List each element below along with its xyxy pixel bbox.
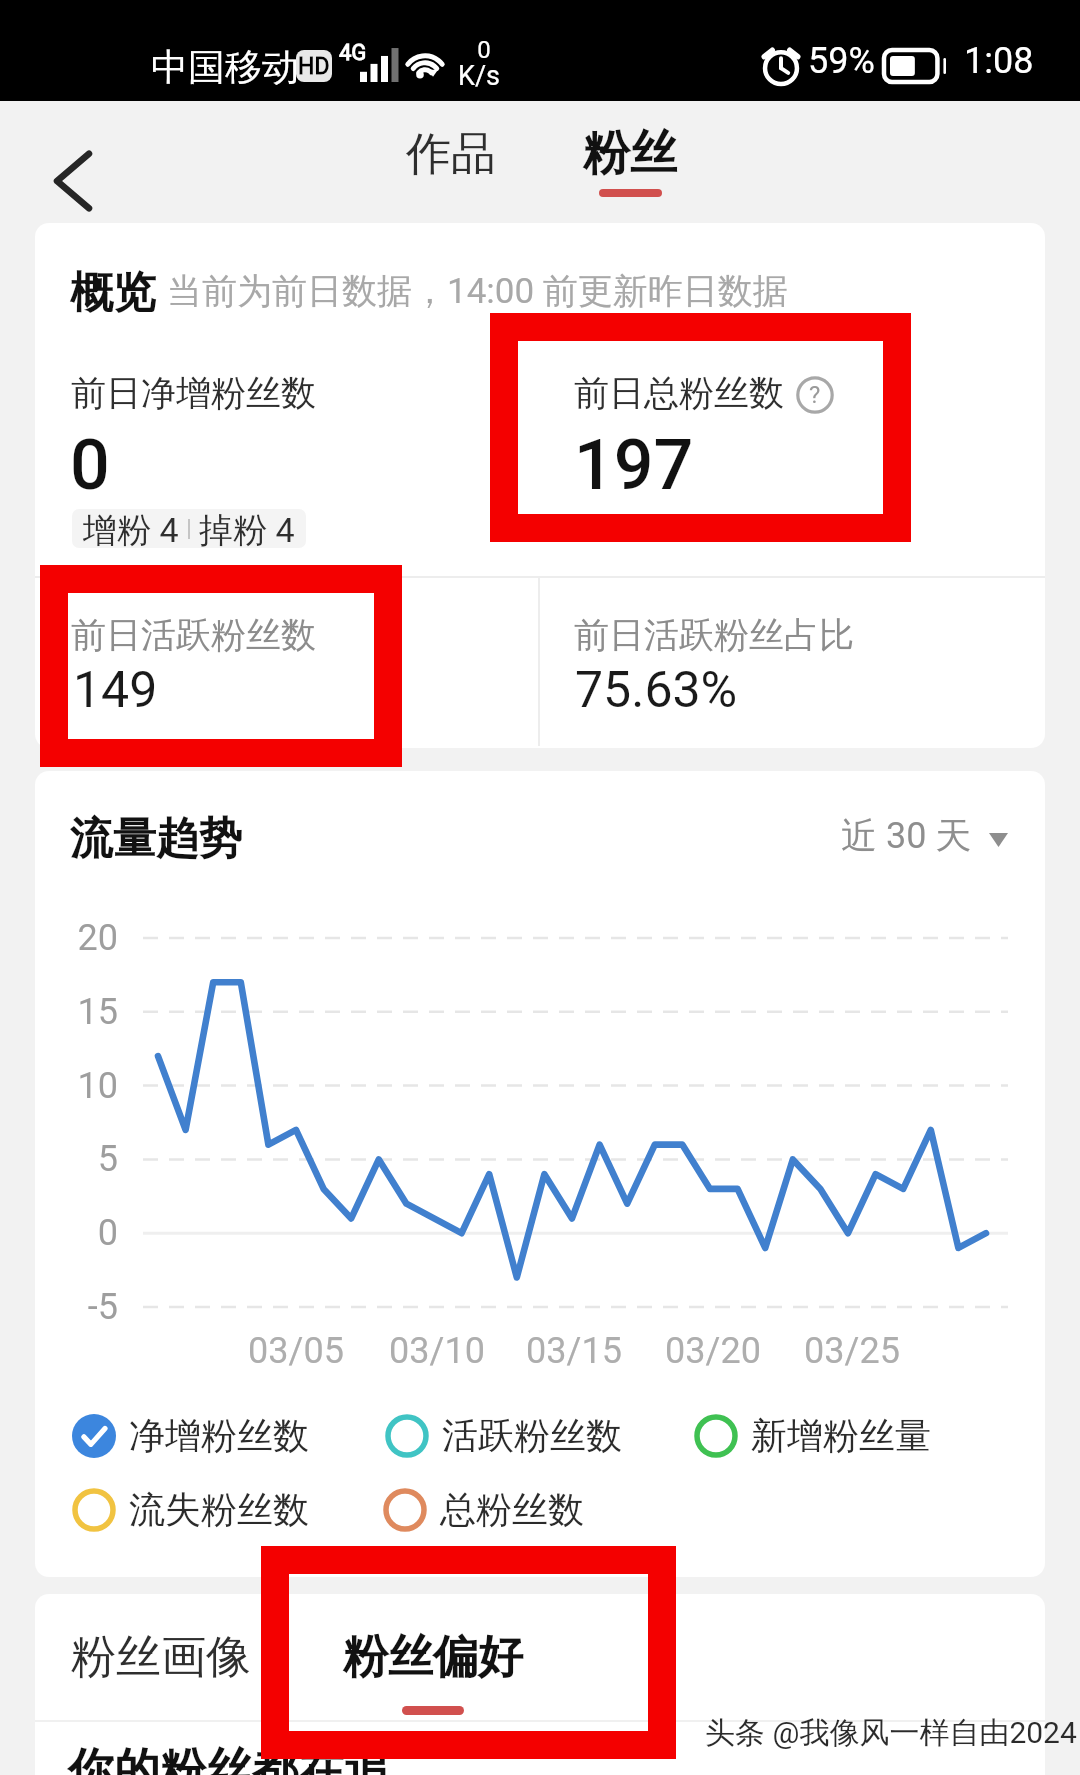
staticText: 新增粉丝量 bbox=[751, 1413, 931, 1458]
button[interactable]: 粉丝画像 bbox=[48, 1609, 274, 1705]
staticText: 增粉 4 bbox=[83, 509, 179, 548]
staticText: 头条 @我像风一样自由2024 bbox=[705, 1714, 1077, 1752]
staticText: 中国移动 bbox=[151, 44, 299, 91]
staticText: 掉粉 4 bbox=[199, 509, 295, 548]
staticText: K/s bbox=[458, 60, 501, 92]
button[interactable]: 粉丝 bbox=[565, 108, 695, 208]
staticText: 5 bbox=[32, 1138, 118, 1180]
staticText: 03/25 bbox=[777, 1330, 927, 1372]
staticText: 总粉丝数 bbox=[440, 1487, 584, 1532]
button[interactable]: 流失粉丝数 bbox=[72, 1487, 309, 1532]
staticText: 03/20 bbox=[638, 1330, 788, 1372]
button[interactable]: 总粉丝数 bbox=[383, 1487, 584, 1532]
staticText: 前日活跃粉丝数 bbox=[71, 613, 316, 657]
staticText: 197 bbox=[574, 424, 694, 506]
staticText: 75.63% bbox=[575, 661, 738, 720]
staticText: 粉丝画像 bbox=[71, 1629, 251, 1686]
staticText: 59% bbox=[808, 40, 875, 82]
staticText: HD bbox=[298, 53, 330, 80]
staticText: 近 30 天 bbox=[841, 813, 972, 858]
staticText: 03/05 bbox=[221, 1330, 371, 1372]
staticText: 流量趋势 bbox=[70, 812, 242, 866]
staticText: 粉丝 bbox=[583, 124, 677, 183]
staticText: 4G bbox=[339, 40, 367, 66]
staticText: 前日总粉丝数 bbox=[574, 371, 784, 415]
staticText: 净增粉丝数 bbox=[129, 1413, 309, 1458]
staticText: 前日活跃粉丝占比 bbox=[574, 613, 854, 657]
staticText: 10 bbox=[32, 1065, 118, 1107]
button[interactable]: 新增粉丝量 bbox=[694, 1413, 931, 1458]
button[interactable]: 粉丝偏好 bbox=[320, 1609, 546, 1719]
staticText: 前日净增粉丝数 bbox=[71, 371, 316, 415]
staticText: 15 bbox=[32, 991, 118, 1033]
staticText: 活跃粉丝数 bbox=[442, 1413, 622, 1458]
button[interactable]: Back bbox=[30, 138, 116, 224]
button[interactable]: 活跃粉丝数 bbox=[385, 1413, 622, 1458]
staticText: ? bbox=[809, 381, 821, 409]
button[interactable]: 净增粉丝数 bbox=[72, 1413, 309, 1458]
staticText: -5 bbox=[32, 1286, 118, 1328]
button[interactable]: 作品 bbox=[386, 113, 516, 195]
staticText: 149 bbox=[73, 661, 158, 720]
staticText: 0 bbox=[464, 36, 504, 64]
staticText: 03/15 bbox=[499, 1330, 649, 1372]
staticText: 0 bbox=[70, 424, 110, 506]
staticText: 作品 bbox=[406, 126, 496, 183]
button[interactable]: Help: total followers bbox=[796, 376, 834, 414]
staticText: 当前为前日数据，14:00 前更新昨日数据 bbox=[167, 269, 788, 313]
staticText: 你的粉丝都在追 bbox=[68, 1742, 390, 1775]
staticText: 流失粉丝数 bbox=[129, 1487, 309, 1532]
staticText: 03/10 bbox=[362, 1330, 512, 1372]
staticText: 概览 bbox=[70, 266, 156, 320]
staticText: 粉丝偏好 bbox=[343, 1629, 523, 1686]
staticText: 1:08 bbox=[964, 40, 1034, 82]
staticText: 20 bbox=[32, 917, 118, 959]
staticText: 0 bbox=[32, 1212, 118, 1254]
button[interactable]: 近 30 天 bbox=[827, 801, 1022, 870]
